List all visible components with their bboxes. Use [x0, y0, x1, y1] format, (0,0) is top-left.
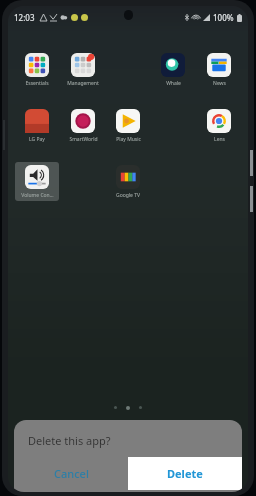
staticText: Play Music [116, 136, 141, 143]
button[interactable]: Volume Con... [15, 162, 59, 201]
staticText: Whale [166, 80, 181, 87]
staticText: 100% [213, 12, 234, 23]
button[interactable]: Google TV [106, 162, 150, 201]
button[interactable]: Delete [128, 457, 242, 490]
staticText: Management [67, 80, 99, 87]
staticText: 12:03 [14, 12, 35, 23]
button[interactable]: Cancel [14, 457, 128, 490]
button[interactable]: Lens [197, 106, 241, 145]
staticText: LG Pay [29, 136, 45, 143]
button[interactable]: News [197, 50, 241, 89]
staticText: Google TV [116, 192, 140, 199]
button[interactable]: SmartWorld [61, 106, 105, 145]
staticText: Essentials [25, 80, 49, 87]
staticText: Volume Con... [21, 192, 54, 199]
staticText: Delete [167, 466, 203, 481]
button[interactable]: Essentials [15, 50, 59, 89]
staticText: SmartWorld [69, 136, 98, 143]
button[interactable]: Whale [151, 50, 195, 89]
staticText: Cancel [54, 466, 89, 481]
button[interactable]: LG Pay [15, 106, 59, 145]
button[interactable]: Management [61, 50, 105, 89]
staticText: News [213, 80, 226, 87]
button[interactable]: Play Music [106, 106, 150, 145]
staticText: Delete this app? [28, 433, 111, 448]
staticText: Lens [214, 136, 225, 143]
